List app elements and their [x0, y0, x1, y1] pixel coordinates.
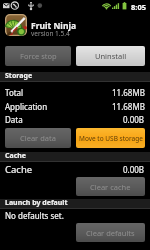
- staticText: No defaults set.: [5, 210, 64, 221]
- staticText: 11.68MB: [112, 101, 145, 112]
- staticText: Data: [5, 114, 23, 125]
- button[interactable]: Uninstall: [76, 46, 145, 66]
- staticText: Storage: [5, 71, 33, 81]
- staticText: Fruit Ninja: [31, 20, 77, 32]
- staticText: Cache: [5, 163, 33, 176]
- staticText: Clear cache: [90, 182, 131, 192]
- staticText: Clear defaults: [86, 228, 135, 238]
- button[interactable]: Force stop: [5, 46, 71, 66]
- staticText: 0.00B: [123, 164, 145, 175]
- staticText: 8:05: [131, 2, 146, 12]
- staticText: Application: [5, 101, 48, 112]
- staticText: Uninstall: [95, 51, 127, 61]
- button[interactable]: Clear cache: [76, 177, 145, 196]
- button[interactable]: Clear data: [5, 128, 71, 148]
- staticText: Move to USB storage: [79, 134, 143, 143]
- staticText: Launch by default: [5, 198, 68, 208]
- staticText: Clear data: [20, 133, 56, 143]
- staticText: Force stop: [20, 51, 57, 61]
- staticText: Cache: [5, 151, 27, 161]
- button[interactable]: Clear defaults: [76, 223, 145, 242]
- button[interactable]: Move to USB storage: [76, 128, 145, 148]
- staticText: 11.68MB: [112, 87, 145, 98]
- staticText: 0.00B: [123, 114, 145, 125]
- staticText: Total: [5, 87, 24, 98]
- staticText: version 1.5.4: [31, 29, 70, 38]
